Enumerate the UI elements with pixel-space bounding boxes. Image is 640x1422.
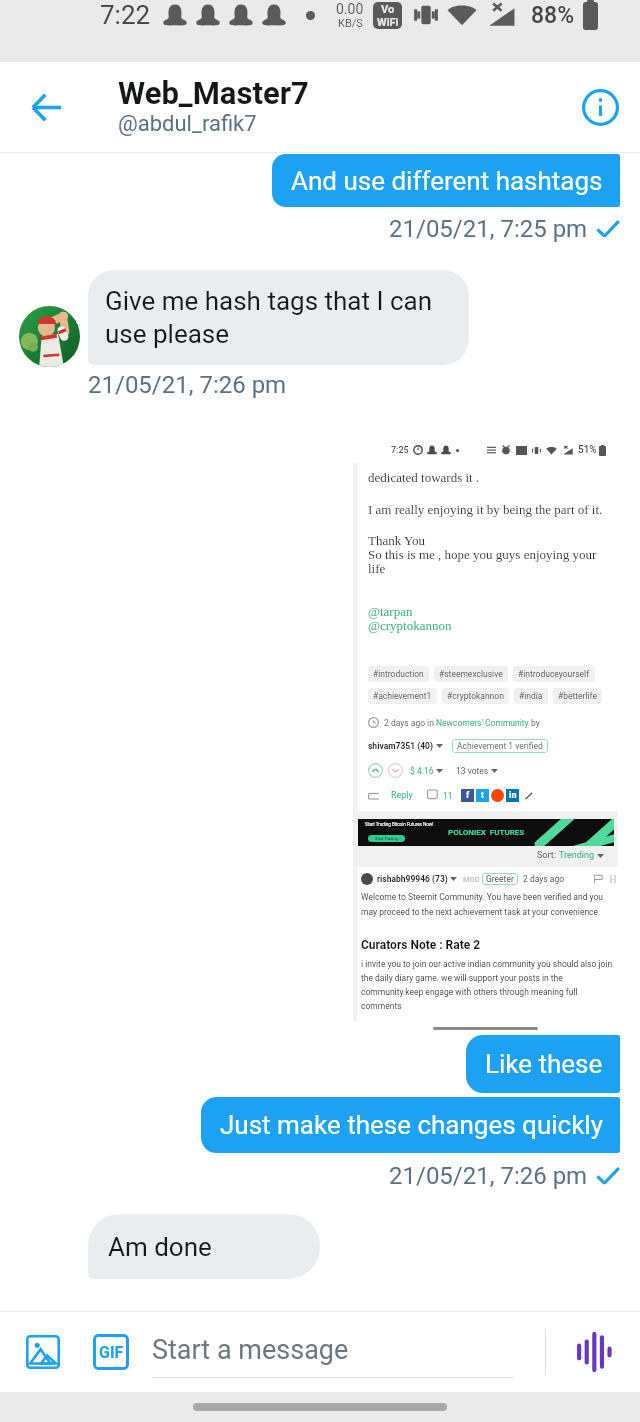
staticText: GIF xyxy=(99,1343,124,1362)
staticText: Reply xyxy=(391,790,413,801)
staticText: Give me hash tags that I can use please xyxy=(105,286,433,349)
staticText: Just make these changes quickly xyxy=(220,1110,603,1140)
staticText: Like these xyxy=(485,1049,603,1079)
staticText: #achievement1 xyxy=(373,691,432,701)
staticText: Vo xyxy=(381,3,395,16)
button[interactable]: And use different hashtags xyxy=(272,154,620,207)
staticText: 21/05/21, 7:26 pm xyxy=(389,1162,588,1190)
button[interactable]: Am done xyxy=(88,1214,320,1279)
staticText: Trending xyxy=(559,850,597,861)
staticText: dedicated towards it . xyxy=(368,470,480,484)
staticText: #introduction xyxy=(373,669,424,679)
staticText: 11 xyxy=(443,791,453,801)
staticText: Newcomers' Community xyxy=(436,718,529,728)
staticText: 21/05/21, 7:25 pm xyxy=(389,215,588,243)
button[interactable]: Add photo xyxy=(26,1335,60,1369)
staticText: And use different hashtags xyxy=(291,166,603,196)
staticText: 0.00 xyxy=(336,1,364,17)
button[interactable]: Give me hash tags that I can use please xyxy=(88,270,469,365)
staticText: Sort: xyxy=(537,850,559,861)
staticText: Start Trading xyxy=(375,836,398,841)
staticText: I am really enjoying it by being the par… xyxy=(368,502,603,516)
staticText: @tarpan xyxy=(368,604,413,618)
staticText: f xyxy=(466,790,470,801)
staticText: Greeter xyxy=(486,874,514,884)
staticText: 7:22 xyxy=(100,0,151,30)
staticText: #introduceyourself xyxy=(518,669,590,679)
staticText: Am done xyxy=(108,1232,212,1262)
staticText: #cryptokannon xyxy=(447,691,504,701)
staticText: $ 4.16 xyxy=(410,766,436,776)
staticText: i invite you to join our active indian c… xyxy=(361,959,613,1011)
staticText: MOD xyxy=(463,875,482,884)
button[interactable]: 7:25 xyxy=(353,437,618,1035)
staticText: #betterlife xyxy=(558,691,597,701)
button[interactable]: Add GIF xyxy=(93,1334,129,1370)
staticText: 13 votes xyxy=(456,766,491,776)
staticText: @cryptokannon xyxy=(368,618,452,632)
staticText: #steemexclusive xyxy=(439,669,503,679)
staticText: 51% xyxy=(578,444,597,456)
staticText: Web_Master7 xyxy=(118,75,309,111)
staticText: [-] xyxy=(610,875,617,884)
button[interactable]: Conversation info xyxy=(560,62,640,152)
staticText: Start Trading Bitcoin Futures Now! xyxy=(365,822,434,827)
staticText: shivam7351 (40) xyxy=(368,741,436,751)
staticText: KB/S xyxy=(338,17,363,30)
staticText: Achievement 1 verified xyxy=(457,741,543,751)
button[interactable]: Back xyxy=(0,62,92,152)
staticText: So this is me , hope you guys enjoying y… xyxy=(368,547,597,561)
staticText: Start a message xyxy=(152,1334,349,1366)
staticText: 2 days ago in xyxy=(384,718,436,728)
staticText: 2 days ago xyxy=(523,874,565,884)
staticText: Welcome to Steemit Community. You have b… xyxy=(361,892,604,917)
staticText: POLONIEX FUTURES xyxy=(448,828,525,837)
staticText: 21/05/21, 7:26 pm xyxy=(88,371,287,399)
staticText: WiFi xyxy=(377,16,399,29)
staticText: 7:25 xyxy=(391,445,409,456)
staticText: #india xyxy=(519,691,543,701)
button[interactable]: Like these xyxy=(466,1035,620,1093)
staticText: by xyxy=(529,718,540,728)
staticText: rishabh99946 (73) xyxy=(377,874,450,884)
button[interactable]: Voice message xyxy=(546,1312,640,1392)
staticText: Curators Note : Rate 2 xyxy=(361,938,481,952)
staticText: life xyxy=(368,561,386,575)
button[interactable]: Just make these changes quickly xyxy=(201,1097,620,1153)
staticText: 88% xyxy=(531,2,575,29)
staticText: Thank You xyxy=(368,533,426,547)
staticText: t xyxy=(481,790,485,801)
staticText: @abdul_rafik7 xyxy=(118,111,257,137)
staticText: in xyxy=(509,790,517,801)
